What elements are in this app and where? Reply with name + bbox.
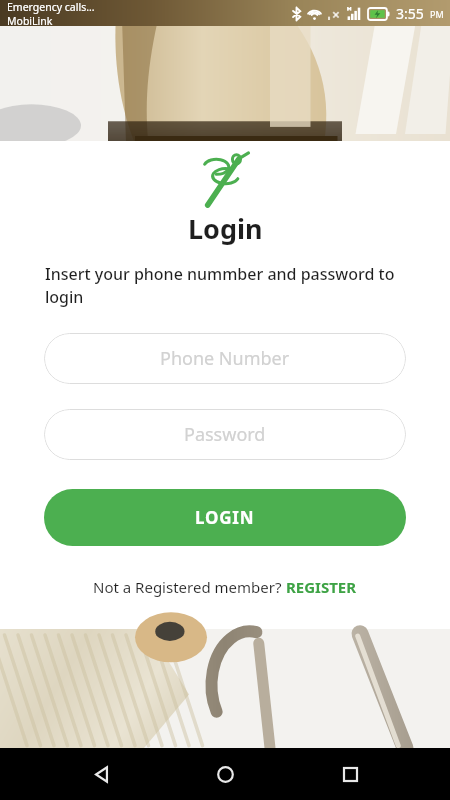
staticText: PM	[430, 8, 444, 20]
staticText: Password	[184, 422, 266, 447]
staticText: Emergency calls...	[7, 0, 95, 14]
staticText: 3:55	[396, 4, 424, 23]
staticText: LOGIN	[195, 506, 255, 529]
staticText: REGISTER	[286, 577, 357, 597]
staticText: Insert your phone nummber and password t…	[45, 263, 405, 308]
staticText: MobiLink	[7, 14, 53, 26]
button[interactable]: Home	[201, 750, 249, 798]
button[interactable]: Password	[44, 409, 406, 460]
button[interactable]: LOGIN	[44, 489, 406, 546]
button[interactable]: Not a Registered member?	[85, 573, 365, 601]
button[interactable]: Recent apps	[326, 750, 374, 798]
button[interactable]: Back	[77, 750, 125, 798]
staticText: Login	[188, 210, 263, 247]
button[interactable]: Phone Number	[44, 333, 406, 384]
staticText: Not a Registered member?	[93, 577, 286, 597]
staticText: Phone Number	[160, 346, 290, 371]
